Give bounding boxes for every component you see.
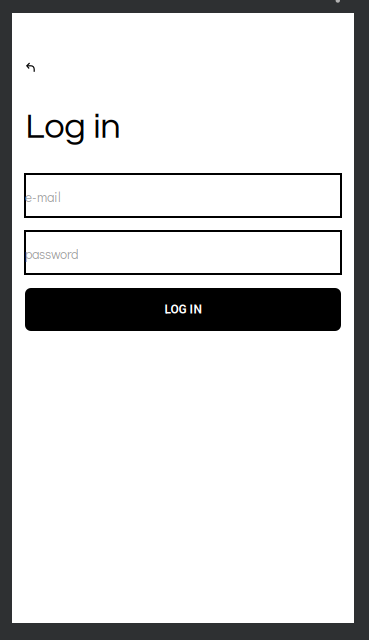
staticText: LOG IN xyxy=(164,302,201,317)
button[interactable]: Back xyxy=(18,55,44,81)
staticText: e-mail xyxy=(25,188,61,205)
staticText: password xyxy=(25,245,78,262)
button[interactable]: LOG IN xyxy=(25,288,341,331)
staticText: Log in xyxy=(25,108,120,145)
